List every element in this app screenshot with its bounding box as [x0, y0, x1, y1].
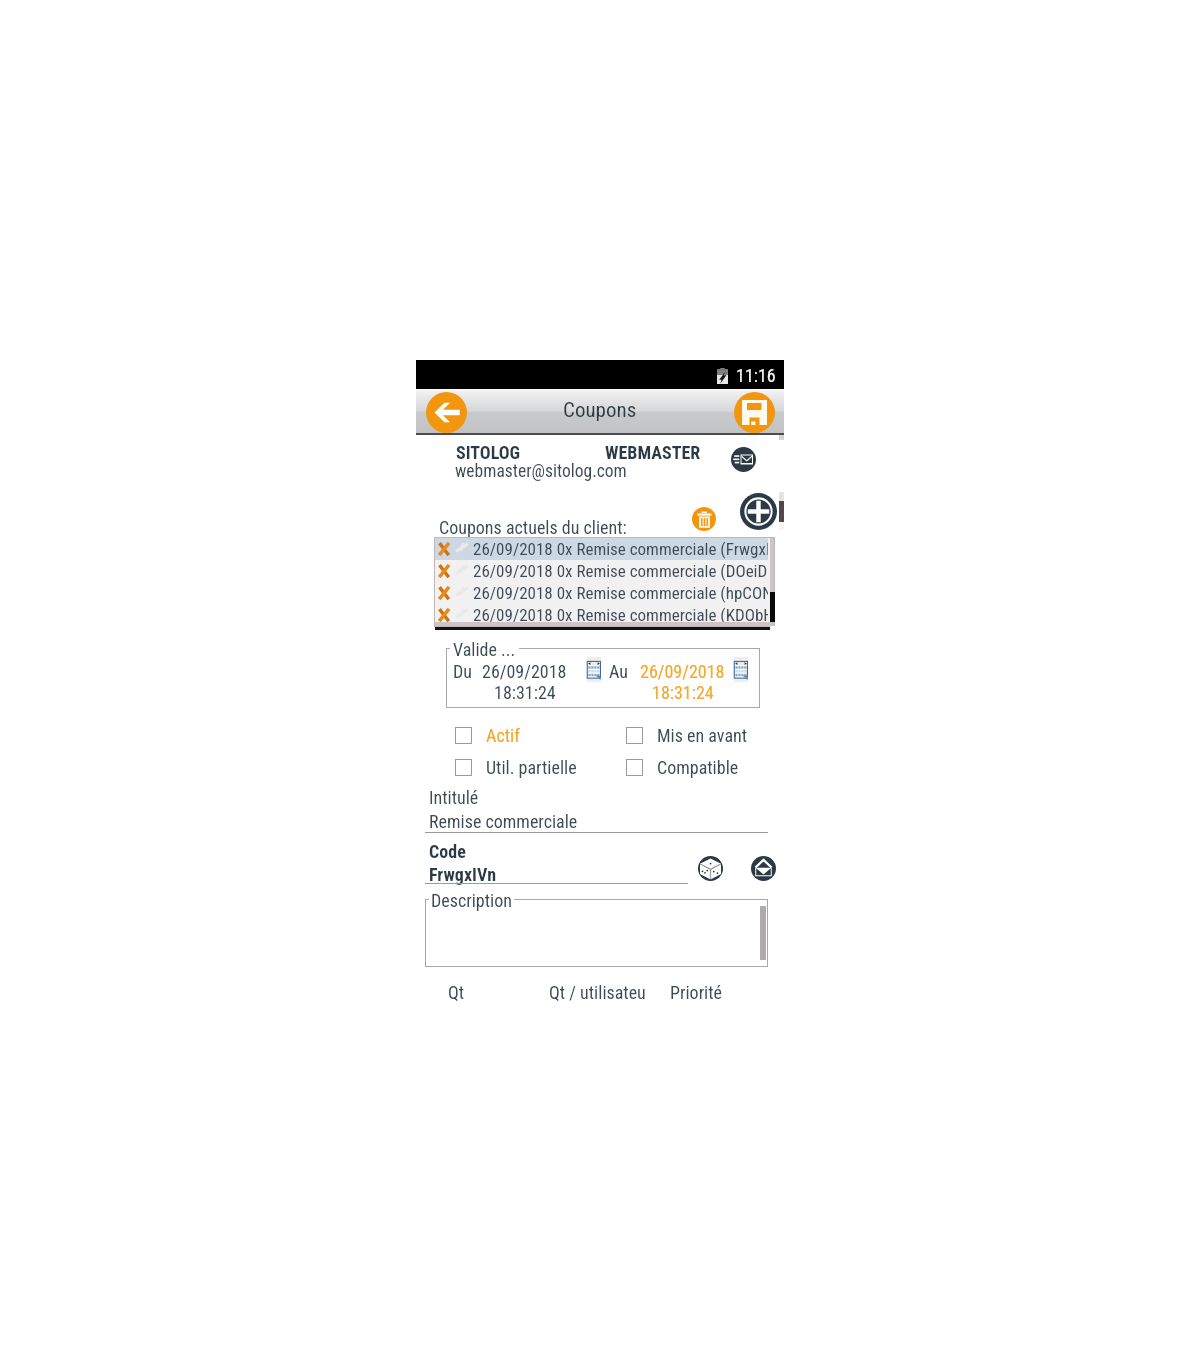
- staticText: WEBMASTER: [605, 442, 701, 463]
- staticText: Actif: [486, 725, 520, 746]
- staticText: Coupons actuels du client:: [439, 517, 627, 538]
- staticText: Remise commerciale: [429, 811, 578, 832]
- staticText: 11:16: [736, 365, 776, 386]
- button[interactable]: Add: [740, 493, 777, 530]
- staticText: Coupons: [563, 398, 637, 423]
- staticText: SITOLOG: [456, 442, 521, 463]
- staticText: Valide ...: [453, 639, 516, 660]
- button[interactable]: Back: [426, 392, 467, 433]
- staticText: 18:31:24: [652, 682, 714, 703]
- staticText: Intitulé: [429, 787, 479, 808]
- button[interactable]: 26/09/2018 0x Remise commerciale (hpCON: [434, 582, 768, 604]
- button[interactable]: Mis en avant: [626, 725, 748, 746]
- button[interactable]: Generate code: [698, 856, 723, 881]
- button[interactable]: 26/09/2018 0x Remise commerciale (DOeiD3: [434, 560, 768, 582]
- button[interactable]: Delete: [692, 507, 716, 531]
- staticText: webmaster@sitolog.com: [455, 461, 627, 482]
- button[interactable]: FrwgxIVn: [425, 861, 688, 884]
- staticText: 26/09/2018 0x Remise commerciale (DOeiD3: [473, 561, 768, 581]
- button[interactable]: Util. partielle: [455, 757, 577, 778]
- staticText: 18:31:24: [494, 682, 556, 703]
- staticText: 26/09/2018 0x Remise commerciale (FrwgxI: [473, 539, 768, 559]
- button[interactable]: Remise commerciale: [425, 808, 768, 833]
- staticText: Mis en avant: [657, 725, 748, 746]
- button[interactable]: Save: [734, 392, 775, 433]
- button[interactable]: 26/09/2018 0x Remise commerciale (KDObH: [434, 604, 768, 626]
- staticText: Code: [429, 841, 466, 862]
- staticText: Du: [453, 661, 472, 682]
- button[interactable]: [425, 899, 768, 967]
- staticText: Qt: [448, 982, 465, 1003]
- staticText: 26/09/2018 0x Remise commerciale (hpCON: [473, 583, 768, 603]
- staticText: Au: [609, 661, 628, 682]
- button[interactable]: Actif: [455, 725, 520, 746]
- staticText: Description: [431, 890, 512, 911]
- button[interactable]: Send email: [731, 447, 756, 472]
- button[interactable]: 26/09/2018 0x Remise commerciale (FrwgxI: [434, 538, 768, 560]
- button[interactable]: Compatible: [626, 757, 739, 778]
- staticText: Util. partielle: [486, 757, 577, 778]
- button[interactable]: Send: [751, 856, 776, 881]
- staticText: Qt / utilisateu: [549, 982, 646, 1003]
- staticText: FrwgxIVn: [429, 864, 497, 885]
- staticText: 26/09/2018 0x Remise commerciale (KDObH: [473, 605, 768, 625]
- staticText: 26/09/2018: [640, 661, 725, 682]
- staticText: Priorité: [670, 982, 723, 1003]
- staticText: 26/09/2018: [482, 661, 567, 682]
- staticText: Compatible: [657, 757, 739, 778]
